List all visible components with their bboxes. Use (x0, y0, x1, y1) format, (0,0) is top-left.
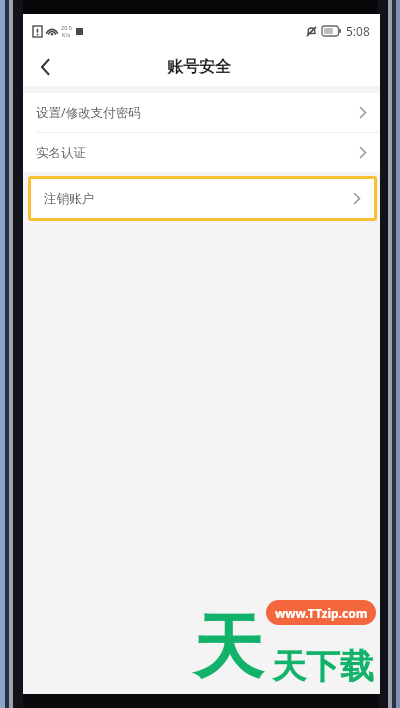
staticText: 20.5 (61, 24, 72, 31)
staticText: 注销账户 (44, 191, 94, 207)
button[interactable]: 实名认证 (23, 133, 380, 172)
staticText: 设置/修改支付密码 (36, 104, 141, 121)
button[interactable]: 注销账户 (31, 179, 374, 218)
button[interactable]: 设置/修改支付密码 (23, 93, 380, 132)
button[interactable]: Back (23, 48, 67, 86)
staticText: 5:08 (346, 23, 370, 39)
staticText: 天下载 (272, 645, 374, 688)
staticText: 账号安全 (167, 57, 231, 77)
staticText: 实名认证 (36, 145, 86, 161)
staticText: 天 (193, 604, 263, 692)
staticText: www.TTzip.com (275, 605, 368, 621)
staticText: K/s (62, 31, 71, 38)
